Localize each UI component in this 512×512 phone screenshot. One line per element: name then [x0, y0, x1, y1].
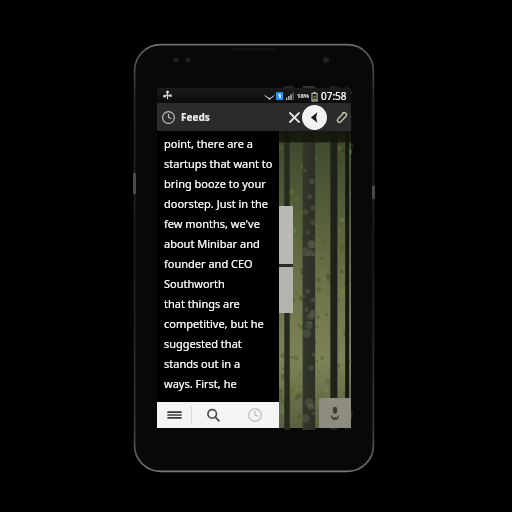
staticText: that things are getting [164, 296, 276, 311]
staticText: about Minibar and Swill.Co- [164, 236, 276, 251]
button[interactable]: History [234, 402, 276, 428]
staticText: Southworth acknowledged [164, 276, 276, 291]
staticText: few months, we've written [164, 216, 276, 231]
staticText: stands out in a couple of [164, 356, 276, 371]
staticText: point, there are a bunch of [164, 136, 276, 151]
staticText: suggested that Thirstie [164, 336, 276, 351]
staticText: founder and CEO Devaraj [164, 256, 276, 271]
staticText: bring booze to your [164, 176, 266, 191]
staticText: ways. First, he argued that [164, 376, 276, 391]
staticText: competitive, but he [164, 316, 264, 331]
button[interactable]: Menu [157, 402, 191, 428]
button[interactable]: Voice search [319, 398, 351, 428]
button[interactable]: Attach [331, 108, 349, 126]
button[interactable]: Back [302, 105, 327, 130]
staticText: 07:58 [321, 89, 347, 103]
button[interactable]: Feeds [162, 110, 210, 124]
staticText: 52 [274, 305, 280, 312]
staticText: Feeds [181, 110, 210, 124]
button[interactable]: Close [285, 108, 303, 126]
staticText: 1 [278, 92, 282, 100]
staticText: startups that want to help [164, 156, 276, 171]
staticText: 28 [274, 255, 280, 262]
button[interactable]: Search [192, 402, 234, 428]
staticText: 18% [297, 92, 310, 100]
staticText: doorstep. Just in the past [164, 196, 276, 211]
